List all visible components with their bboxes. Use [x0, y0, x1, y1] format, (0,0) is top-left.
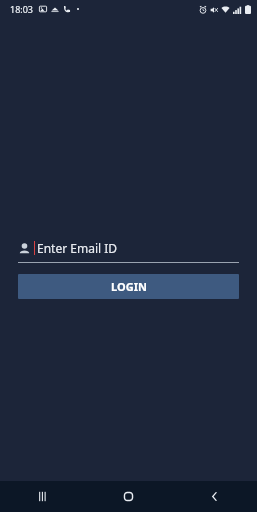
staticText: LOGIN — [111, 279, 147, 294]
button[interactable]: Enter Email ID — [18, 240, 239, 263]
button[interactable]: LOGIN — [18, 274, 239, 299]
button[interactable]: Home — [85, 481, 171, 512]
button[interactable]: Back — [171, 481, 257, 512]
staticText: 18:03 — [10, 3, 34, 15]
staticText: Enter Email ID — [37, 240, 118, 256]
button[interactable]: Recent apps — [0, 481, 85, 512]
